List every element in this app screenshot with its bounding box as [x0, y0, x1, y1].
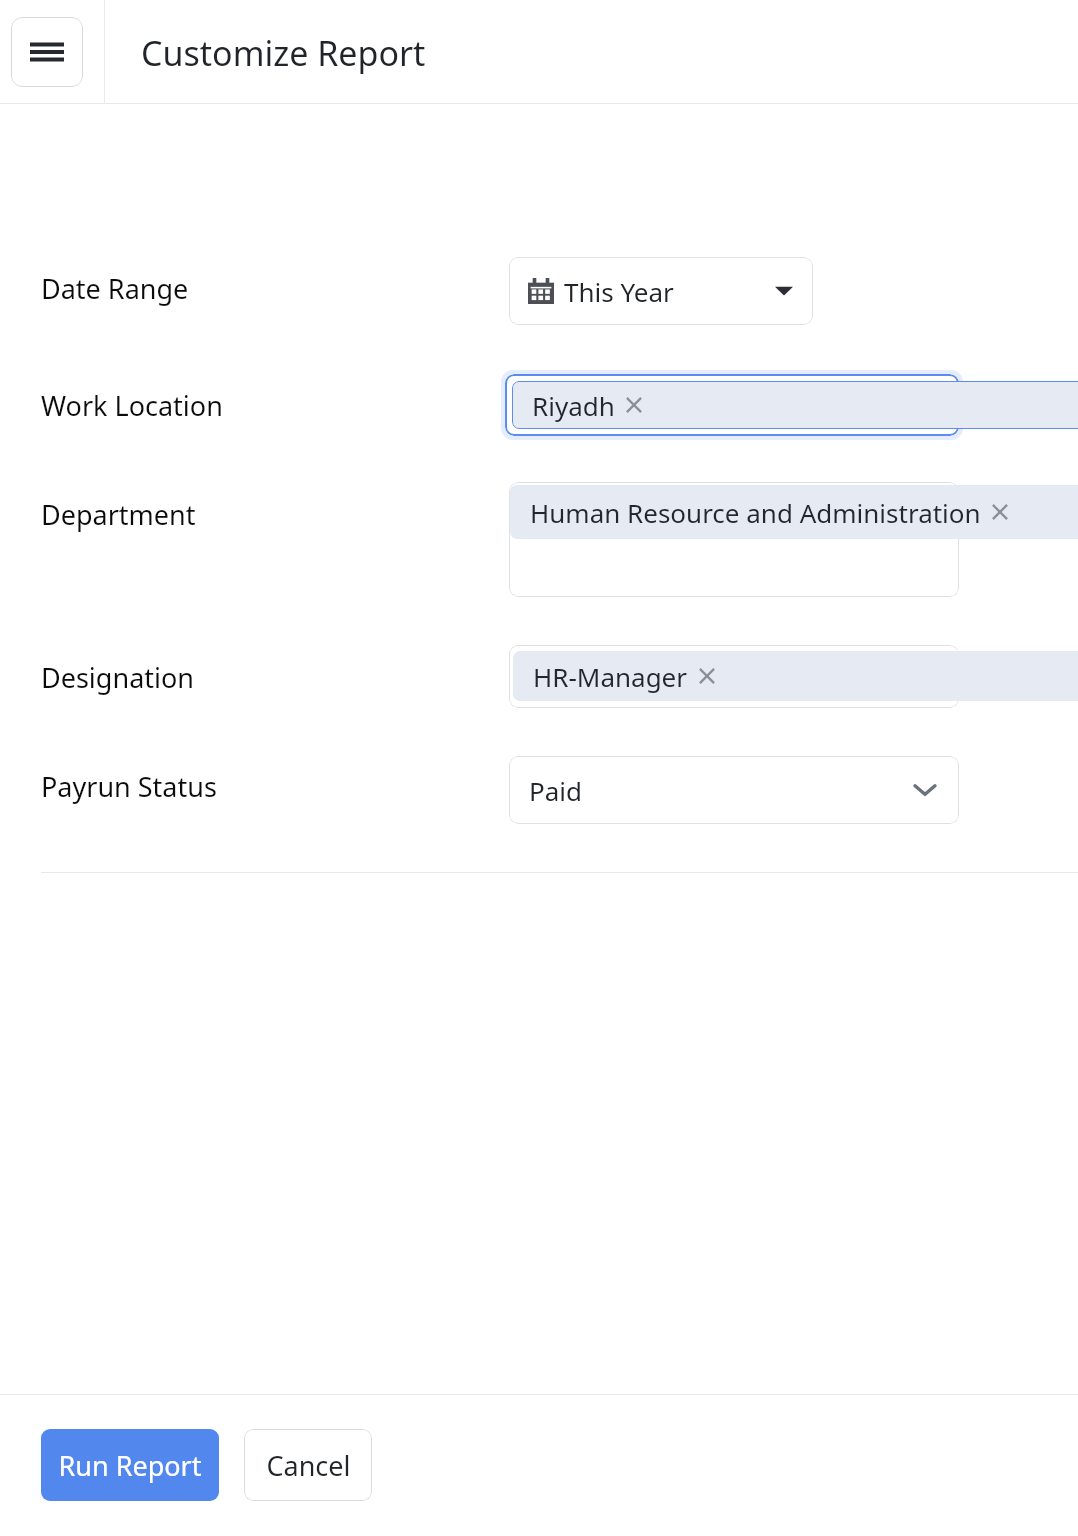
staticText: Riyadh [532, 388, 615, 423]
button[interactable]: Menu [0, 0, 104, 103]
staticText: Department [41, 496, 196, 533]
button[interactable]: HR-Manager [513, 651, 1078, 701]
button[interactable]: Paid [509, 756, 959, 824]
button[interactable]: Human Resource and Administration [510, 485, 1078, 539]
staticText: Payrun Status [41, 768, 217, 805]
button[interactable]: Cancel [244, 1429, 372, 1501]
staticText: Run Report [58, 1447, 202, 1484]
staticText: This Year [564, 274, 674, 309]
staticText: Cancel [266, 1447, 351, 1484]
staticText: Work Location [41, 387, 223, 424]
staticText: Designation [41, 659, 195, 696]
staticText: Human Resource and Administration [530, 495, 981, 530]
button[interactable] [509, 645, 959, 708]
button[interactable] [505, 374, 959, 436]
staticText: Date Range [41, 270, 189, 307]
button[interactable]: This Year [509, 257, 813, 325]
staticText: Paid [529, 773, 583, 808]
button[interactable] [509, 482, 959, 597]
staticText: HR-Manager [533, 659, 688, 694]
staticText: Customize Report [141, 30, 426, 76]
button[interactable]: Riyadh [512, 381, 1078, 429]
button[interactable]: Run Report [41, 1429, 219, 1501]
